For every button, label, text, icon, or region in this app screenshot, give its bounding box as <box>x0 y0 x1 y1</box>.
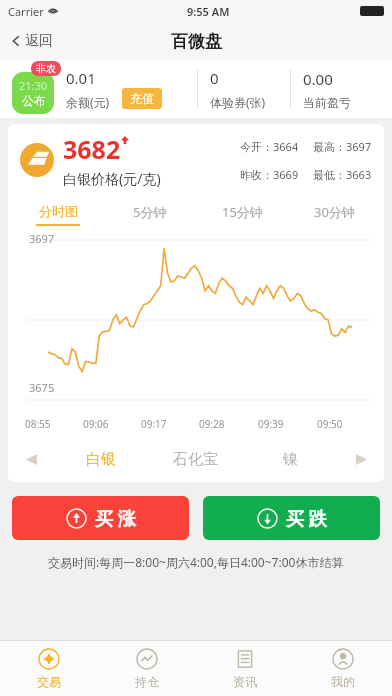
button[interactable]: Previous symbol <box>8 436 54 482</box>
button[interactable]: Next symbol <box>338 436 384 482</box>
staticText: 买 跌 <box>286 506 327 531</box>
button[interactable]: 我的 <box>294 641 392 696</box>
staticText: 分时图 <box>39 203 78 219</box>
staticText: 30分钟 <box>314 203 355 221</box>
staticText: 3682 <box>63 132 121 166</box>
staticText: 09:06 <box>83 417 109 431</box>
staticText: 08:55 <box>25 417 51 431</box>
button[interactable]: 石化宝 <box>148 436 243 482</box>
staticText: 最低：3663 <box>313 167 372 182</box>
staticText: 09:28 <box>199 417 225 431</box>
button[interactable]: 买 涨 <box>12 496 189 540</box>
button[interactable]: 21:30 <box>12 72 54 114</box>
staticText: 交易 <box>37 674 61 689</box>
staticText: 9:55 AM <box>187 4 230 19</box>
button[interactable]: 白银 <box>54 436 148 482</box>
staticText: 我的 <box>331 674 355 689</box>
staticText: 3697 <box>29 231 55 246</box>
staticText: 资讯 <box>233 674 257 689</box>
staticText: 今开：3664 <box>240 139 299 154</box>
staticText: 返回 <box>25 32 53 50</box>
staticText: 昨收：3669 <box>240 167 299 182</box>
staticText: 充值 <box>130 91 154 106</box>
staticText: 15分钟 <box>222 203 263 221</box>
staticText: 最高：3697 <box>313 139 372 154</box>
staticText: 石化宝 <box>173 450 218 469</box>
button[interactable]: 充值 <box>122 88 162 109</box>
staticText: 交易时间:每周一8:00~周六4:00,每日4:00~7:00休市结算 <box>48 554 344 570</box>
staticText: 体验券(张) <box>210 94 266 110</box>
button[interactable]: 15分钟 <box>196 196 288 228</box>
staticText: 持仓 <box>135 674 159 689</box>
button[interactable]: 镍 <box>243 436 338 482</box>
staticText: 白银 <box>86 450 116 469</box>
staticText: 3675 <box>29 380 55 395</box>
staticText: 当前盈亏 <box>303 95 351 110</box>
staticText: 09:17 <box>141 417 167 431</box>
staticText: 余额(元) <box>66 94 110 110</box>
staticText: 21:30 <box>19 78 48 93</box>
button[interactable]: 资讯 <box>196 641 294 696</box>
staticText: 0 <box>210 68 219 88</box>
button[interactable]: 买 跌 <box>203 496 380 540</box>
button[interactable]: 30分钟 <box>288 196 380 228</box>
staticText: 公布 <box>22 93 46 108</box>
button[interactable]: 分时图 <box>12 196 104 228</box>
staticText: 09:39 <box>258 417 284 431</box>
staticText: 白银价格(元/克) <box>63 169 161 188</box>
button[interactable]: 5分钟 <box>104 196 196 228</box>
staticText: 5分钟 <box>133 203 167 221</box>
button[interactable]: 交易 <box>0 641 98 696</box>
staticText: 百微盘 <box>171 31 222 52</box>
staticText: 买 涨 <box>95 506 136 531</box>
staticText: 非农 <box>36 62 56 75</box>
staticText: 镍 <box>283 450 298 469</box>
button[interactable]: 返回 <box>0 25 63 57</box>
button[interactable]: 持仓 <box>98 641 196 696</box>
staticText: 0.00 <box>303 69 333 89</box>
staticText: Carrier <box>8 4 44 19</box>
staticText: 09:50 <box>317 417 343 431</box>
staticText: 0.01 <box>66 68 96 88</box>
